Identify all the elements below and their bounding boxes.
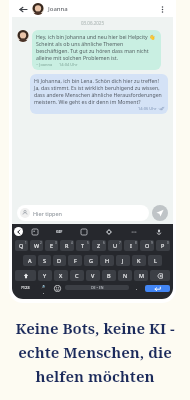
staticText: N xyxy=(123,272,128,279)
staticText: D xyxy=(57,257,62,264)
staticText: 2 xyxy=(40,241,42,245)
staticText: 5 xyxy=(87,241,89,245)
staticText: GIF xyxy=(56,229,63,234)
staticText: echte Menschen, die xyxy=(18,342,172,362)
button[interactable]: Z xyxy=(92,240,106,251)
staticText: L xyxy=(154,257,157,264)
button[interactable]: Expand toolbar xyxy=(14,227,23,236)
button[interactable]: Voice input xyxy=(146,229,171,235)
staticText: 14:04 Uhr xyxy=(59,62,78,67)
staticText: Y xyxy=(43,272,47,279)
button[interactable]: Clipboard xyxy=(71,229,96,235)
button[interactable]: B xyxy=(102,270,116,281)
button[interactable]: Settings xyxy=(96,229,121,235)
button[interactable]: Space xyxy=(65,285,129,290)
staticText: , xyxy=(43,289,45,294)
button[interactable]: Y xyxy=(38,270,52,281)
button[interactable]: S xyxy=(38,255,51,266)
staticText: 0 xyxy=(167,241,169,245)
staticText: J xyxy=(122,257,124,264)
button[interactable]: G xyxy=(84,255,98,266)
staticText: . xyxy=(136,285,138,291)
staticText: P xyxy=(161,242,165,249)
staticText: 4 xyxy=(71,241,73,245)
button[interactable]: Shift xyxy=(15,270,36,281)
button[interactable]: Comma xyxy=(37,285,49,294)
staticText: X xyxy=(59,272,63,279)
button[interactable]: E xyxy=(45,240,58,251)
staticText: M xyxy=(139,272,144,279)
staticText: B xyxy=(107,272,111,279)
staticText: H xyxy=(105,257,110,264)
button[interactable]: Hier tippen xyxy=(17,205,149,221)
staticText: 3 xyxy=(55,241,57,245)
button[interactable]: Hey, ich bin Johanna und neu hier bei He… xyxy=(32,30,161,70)
button[interactable]: ?123 xyxy=(15,285,35,290)
button[interactable]: D xyxy=(53,255,66,266)
staticText: F xyxy=(74,257,77,264)
staticText: 9 xyxy=(151,241,153,245)
staticText: V xyxy=(91,272,95,279)
staticText: U xyxy=(113,242,118,249)
button[interactable]: A xyxy=(23,255,36,266)
button[interactable]: More options xyxy=(156,3,168,15)
button[interactable]: Q xyxy=(15,240,28,251)
button[interactable]: J xyxy=(116,255,130,266)
button[interactable]: Back xyxy=(17,3,29,15)
staticText: R xyxy=(65,242,69,249)
staticText: 🔎 xyxy=(41,285,46,289)
button[interactable]: V xyxy=(86,270,100,281)
button[interactable]: W xyxy=(30,240,43,251)
staticText: C xyxy=(75,272,79,279)
staticText: Q xyxy=(19,242,24,249)
button[interactable]: L xyxy=(148,255,162,266)
staticText: Hey, ich bin Johanna und neu hier bei He… xyxy=(36,33,157,61)
staticText: ~ Joanna xyxy=(36,62,53,67)
staticText: Keine Bots, keine KI - xyxy=(15,318,175,338)
button[interactable]: C xyxy=(70,270,84,281)
button[interactable]: T xyxy=(76,240,90,251)
staticText: Hi Johanna, ich bin Lena. Schön dich hie… xyxy=(34,77,164,105)
button[interactable]: Enter xyxy=(145,285,170,292)
staticText: Joanna xyxy=(48,5,68,13)
staticText: DE • EN xyxy=(91,285,104,290)
button[interactable]: U xyxy=(108,240,122,251)
button[interactable]: I xyxy=(124,240,138,251)
button[interactable]: Backspace xyxy=(150,270,170,281)
staticText: Z xyxy=(97,242,101,249)
staticText: ?123 xyxy=(21,285,30,290)
staticText: E xyxy=(50,242,54,249)
button[interactable]: H xyxy=(100,255,114,266)
staticText: 7 xyxy=(119,241,121,245)
staticText: A xyxy=(28,257,32,264)
staticText: I xyxy=(130,242,132,249)
staticText: W xyxy=(34,242,40,249)
button[interactable]: P xyxy=(156,240,170,251)
button[interactable]: Emoji xyxy=(51,285,63,292)
staticText: T xyxy=(81,242,85,249)
staticText: 8 xyxy=(135,241,137,245)
button[interactable]: Period xyxy=(131,285,143,291)
staticText: 6 xyxy=(103,241,105,245)
button[interactable]: R xyxy=(60,240,74,251)
button[interactable]: Stickers xyxy=(23,229,47,235)
staticText: Hier tippen xyxy=(33,210,62,217)
button[interactable]: X xyxy=(54,270,68,281)
button[interactable]: K xyxy=(132,255,146,266)
staticText: helfen möchten xyxy=(35,366,155,386)
staticText: S xyxy=(43,257,47,264)
staticText: G xyxy=(89,257,94,264)
button[interactable]: M xyxy=(134,270,148,281)
button[interactable]: F xyxy=(68,255,82,266)
staticText: 14:06 Uhr xyxy=(138,106,157,111)
staticText: 03.06.2025 xyxy=(81,20,105,26)
staticText: O xyxy=(145,242,150,249)
button[interactable]: Send xyxy=(152,205,168,221)
staticText: K xyxy=(137,257,141,264)
button[interactable]: Hi Johanna, ich bin Lena. Schön dich hie… xyxy=(30,74,168,114)
button[interactable]: O xyxy=(140,240,154,251)
button[interactable]: N xyxy=(118,270,132,281)
staticText: 1 xyxy=(25,241,27,245)
